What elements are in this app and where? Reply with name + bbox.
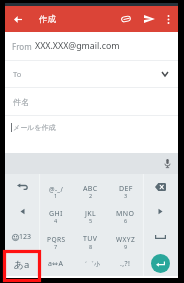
button[interactable]: 123 bbox=[5, 224, 39, 250]
staticText: TUV bbox=[83, 234, 98, 244]
button[interactable]: Voice input bbox=[156, 153, 178, 174]
staticText: DEF bbox=[119, 184, 133, 194]
button[interactable]: To bbox=[5, 61, 178, 87]
button[interactable]: あa bbox=[5, 250, 39, 276]
button[interactable]: GHI bbox=[39, 199, 73, 224]
staticText: 9 bbox=[124, 243, 128, 250]
staticText: JKL bbox=[85, 209, 97, 219]
button[interactable]: Send bbox=[137, 6, 159, 32]
staticText: 7 bbox=[54, 243, 58, 250]
staticText: XXX.XXX@gmail.com bbox=[35, 40, 120, 52]
staticText: 4 bbox=[54, 217, 58, 224]
button[interactable]: More options bbox=[159, 6, 177, 32]
button[interactable]: メールを作成 bbox=[5, 116, 178, 138]
button[interactable]: From bbox=[5, 32, 178, 60]
staticText: 件名 bbox=[13, 97, 29, 107]
button[interactable]: Enter bbox=[143, 250, 178, 276]
button[interactable]: PQRS bbox=[39, 224, 73, 250]
staticText: 5 bbox=[89, 217, 93, 224]
staticText: 2 bbox=[89, 192, 93, 199]
staticText: From bbox=[12, 41, 32, 52]
staticText: .,?! bbox=[120, 259, 131, 269]
staticText: ABC bbox=[83, 184, 98, 194]
button[interactable]: ABC bbox=[73, 174, 108, 199]
staticText: 作成 bbox=[39, 14, 56, 25]
staticText: あa bbox=[14, 258, 30, 271]
staticText: @-_/ bbox=[49, 185, 64, 193]
staticText: 8 bbox=[89, 243, 93, 250]
staticText: PQRS bbox=[47, 235, 66, 244]
button[interactable]: JKL bbox=[73, 199, 108, 224]
button[interactable] bbox=[5, 199, 39, 224]
button[interactable]: TUV bbox=[73, 224, 108, 250]
staticText: WXYZ bbox=[116, 235, 136, 244]
button[interactable]: MNO bbox=[108, 199, 143, 224]
button[interactable]: @-_/ bbox=[39, 174, 73, 199]
button[interactable]: Enter bbox=[151, 254, 170, 273]
staticText: 6 bbox=[124, 217, 128, 224]
button[interactable] bbox=[5, 174, 39, 199]
staticText: a⇔A bbox=[48, 259, 64, 269]
staticText: ゛゜小 bbox=[81, 260, 101, 268]
button[interactable]: Back bbox=[5, 6, 31, 32]
button[interactable]: WXYZ bbox=[108, 224, 143, 250]
button[interactable]: DEF bbox=[108, 174, 143, 199]
staticText: 3 bbox=[124, 192, 128, 199]
button[interactable]: ゛゜小 bbox=[73, 250, 108, 276]
staticText: メールを作成 bbox=[13, 123, 56, 132]
staticText: GHI bbox=[49, 209, 63, 219]
button[interactable]: 件名 bbox=[5, 88, 178, 115]
button[interactable] bbox=[143, 224, 178, 250]
staticText: MNO bbox=[116, 209, 135, 219]
button[interactable]: a⇔A bbox=[39, 250, 73, 276]
staticText: To bbox=[13, 69, 22, 79]
button[interactable]: Attach file bbox=[115, 6, 137, 32]
staticText: 1 bbox=[54, 192, 58, 199]
button[interactable] bbox=[143, 174, 178, 199]
button[interactable] bbox=[143, 199, 178, 224]
staticText: 123 bbox=[19, 232, 32, 242]
button[interactable]: .,?! bbox=[108, 250, 143, 276]
